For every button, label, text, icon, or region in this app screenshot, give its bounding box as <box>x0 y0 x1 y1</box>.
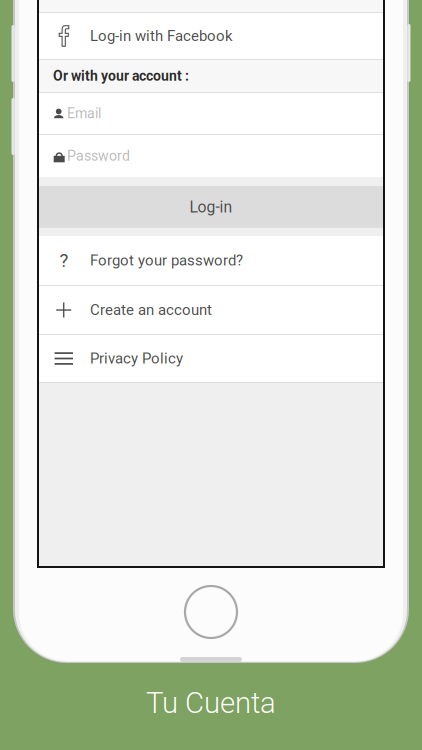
button[interactable]: Log-in with Facebook <box>39 13 383 59</box>
staticText: Privacy Policy <box>90 350 183 367</box>
staticText: Tu Cuenta <box>146 686 276 720</box>
staticText: Log-in with Facebook <box>90 27 233 45</box>
staticText: Password <box>67 148 130 164</box>
staticText: Email <box>67 105 101 122</box>
staticText: Create an account <box>90 301 212 319</box>
button[interactable]: Password <box>39 135 383 177</box>
button[interactable]: ? <box>39 236 383 285</box>
staticText: Or with your account : <box>53 68 189 84</box>
button[interactable]: Privacy Policy <box>39 335 383 382</box>
staticText: Forgot your password? <box>90 252 243 269</box>
staticText: Log-in <box>189 198 232 216</box>
button[interactable]: Create an account <box>39 286 383 334</box>
staticText: ? <box>59 250 68 271</box>
button[interactable]: Log-in <box>39 187 383 227</box>
button[interactable]: Email <box>39 93 383 134</box>
